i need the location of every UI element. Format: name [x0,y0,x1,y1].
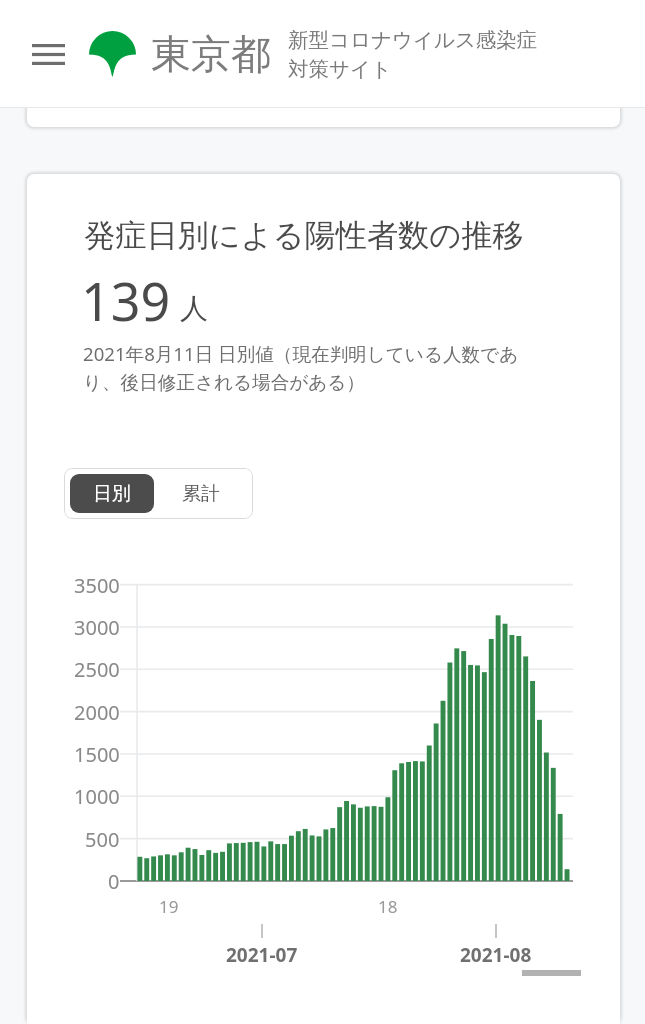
staticText: 500 [85,826,120,853]
staticText: 発症日別による陽性者数の推移 [84,216,524,255]
staticText: 日別 [93,482,131,506]
staticText: 3000 [74,614,120,641]
staticText: 2500 [74,656,120,683]
button[interactable]: 累計 [154,474,247,513]
staticText: 1500 [74,741,120,768]
staticText: 19 [159,895,179,918]
staticText: 累計 [182,482,220,506]
staticText: 0 [108,868,120,895]
button[interactable]: 日別 [70,474,154,513]
staticText: 1000 [74,783,120,810]
staticText: 2021年8月11日 日別値（現在判明している人数であ り、後日修正される場合が… [83,341,519,394]
staticText: 東京都 [151,29,271,79]
staticText: 3500 [74,572,120,599]
staticText: 18 [378,895,398,918]
staticText: 人 [180,291,208,326]
staticText: 新型コロナウイルス感染症 対策サイト [288,27,538,82]
button[interactable]: Menu [20,26,76,82]
staticText: 139 [81,265,171,336]
staticText: 2021-07 [226,942,298,968]
staticText: 2021-08 [460,942,532,968]
staticText: 2000 [74,699,120,726]
